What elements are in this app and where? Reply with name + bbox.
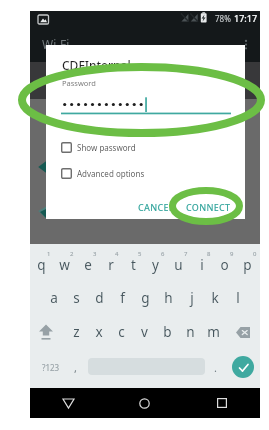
staticText: 4 bbox=[115, 250, 119, 258]
staticText: CANCEL bbox=[138, 201, 174, 213]
staticText: b bbox=[163, 323, 172, 341]
staticText: z bbox=[73, 323, 80, 341]
staticText: e bbox=[84, 256, 92, 274]
staticText: 6 bbox=[161, 250, 165, 258]
button[interactable]: Home bbox=[106, 388, 183, 418]
button[interactable]: Back bbox=[30, 388, 106, 418]
button[interactable]: j bbox=[180, 282, 203, 314]
button[interactable]: w bbox=[53, 249, 76, 281]
button[interactable]: . bbox=[204, 354, 226, 380]
staticText: d bbox=[95, 289, 104, 307]
button[interactable]: Recents bbox=[183, 388, 260, 418]
staticText: Wi-Fi bbox=[42, 36, 70, 52]
staticText: i bbox=[200, 256, 204, 274]
button[interactable]: h bbox=[157, 282, 180, 314]
button[interactable]: y bbox=[144, 249, 167, 281]
staticText: y bbox=[152, 256, 159, 274]
button[interactable]: q bbox=[30, 249, 53, 281]
button[interactable]: u bbox=[167, 249, 190, 281]
staticText: Show password bbox=[77, 142, 136, 153]
button[interactable]: Show password bbox=[61, 141, 136, 153]
button[interactable]: d bbox=[88, 282, 111, 314]
button[interactable]: a bbox=[42, 282, 65, 314]
button[interactable]: Backspace bbox=[232, 320, 254, 344]
button[interactable]: c bbox=[110, 316, 133, 348]
button[interactable]: , bbox=[64, 354, 86, 380]
staticText: t bbox=[131, 256, 136, 274]
staticText: u bbox=[174, 256, 183, 274]
button[interactable]: r bbox=[99, 249, 122, 281]
button[interactable]: Shift bbox=[34, 319, 58, 345]
staticText: r bbox=[108, 256, 114, 274]
button[interactable]: g bbox=[134, 282, 157, 314]
button[interactable]: z bbox=[65, 316, 88, 348]
staticText: , bbox=[74, 360, 77, 375]
staticText: 8 bbox=[207, 250, 211, 258]
button[interactable]: Done bbox=[232, 356, 254, 378]
staticText: 9 bbox=[230, 250, 234, 258]
button[interactable]: x bbox=[87, 316, 110, 348]
staticText: ?123 bbox=[42, 362, 60, 373]
button[interactable]: e bbox=[76, 249, 99, 281]
staticText: l bbox=[236, 289, 240, 307]
button[interactable]: ?123 bbox=[36, 354, 66, 380]
button[interactable]: l bbox=[226, 282, 249, 314]
staticText: 0 bbox=[253, 250, 257, 258]
staticText: o bbox=[220, 256, 229, 274]
staticText: . bbox=[214, 360, 217, 375]
button[interactable]: CANCEL bbox=[134, 198, 178, 216]
staticText: 5 bbox=[138, 250, 142, 258]
staticText: h bbox=[164, 289, 173, 307]
staticText: v bbox=[141, 323, 148, 341]
staticText: x bbox=[95, 323, 103, 341]
staticText: n bbox=[186, 323, 195, 341]
button[interactable]: CONNECT bbox=[182, 198, 235, 216]
staticText: q bbox=[37, 256, 46, 274]
button[interactable]: k bbox=[203, 282, 226, 314]
staticText: CDFInternal bbox=[62, 57, 131, 73]
staticText: 3 bbox=[93, 250, 97, 258]
staticText: a bbox=[50, 289, 58, 307]
button[interactable]: p bbox=[236, 249, 259, 281]
button[interactable]: s bbox=[65, 282, 88, 314]
staticText: 1 bbox=[47, 250, 51, 258]
staticText: Password bbox=[62, 78, 96, 88]
button[interactable]: v bbox=[133, 316, 156, 348]
staticText: 78% bbox=[215, 13, 231, 24]
staticText: j bbox=[190, 289, 194, 307]
staticText: 17:17 bbox=[234, 12, 258, 24]
button[interactable]: b bbox=[156, 316, 179, 348]
staticText: w bbox=[59, 256, 70, 274]
staticText: g bbox=[141, 289, 150, 307]
button[interactable]: f bbox=[111, 282, 134, 314]
button[interactable]: Advanced options bbox=[61, 167, 145, 179]
staticText: p bbox=[243, 256, 252, 274]
staticText: c bbox=[118, 323, 125, 341]
staticText: Advanced options bbox=[77, 168, 145, 179]
button[interactable]: m bbox=[202, 316, 225, 348]
staticText: s bbox=[73, 289, 80, 307]
button[interactable]: o bbox=[213, 249, 236, 281]
staticText: m bbox=[207, 323, 220, 341]
staticText: 2 bbox=[70, 250, 74, 258]
staticText: CONNECT bbox=[186, 201, 231, 213]
staticText: 7 bbox=[184, 250, 188, 258]
staticText: f bbox=[120, 289, 125, 307]
button[interactable]: i bbox=[190, 249, 213, 281]
button[interactable]: n bbox=[179, 316, 202, 348]
button[interactable]: t bbox=[122, 249, 145, 281]
staticText: k bbox=[211, 289, 219, 307]
